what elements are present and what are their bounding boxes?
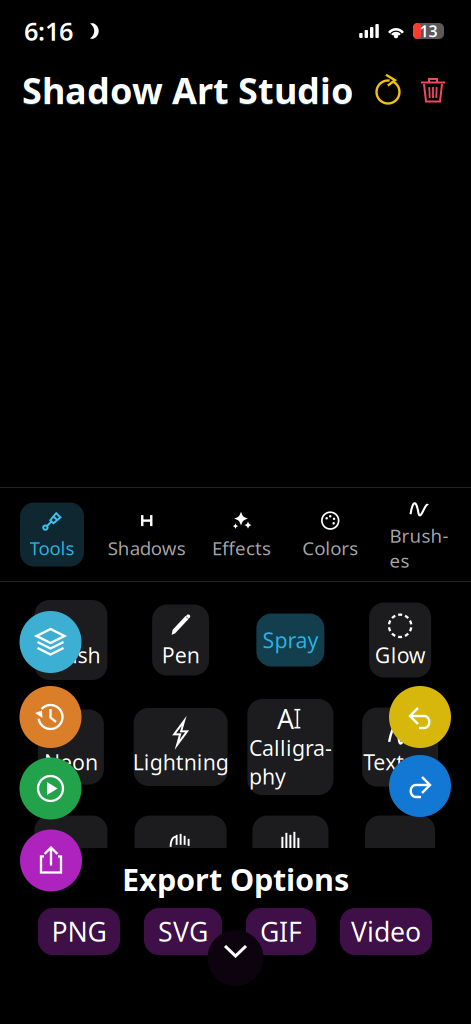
- button[interactable]: GIF: [246, 908, 316, 955]
- button[interactable]: Effects: [209, 502, 273, 566]
- staticText: Neon: [44, 748, 98, 776]
- button[interactable]: Tools: [20, 502, 84, 566]
- button[interactable]: Neon: [16, 709, 126, 784]
- button[interactable]: Redo: [389, 755, 451, 817]
- button[interactable]: Spray: [235, 613, 345, 666]
- staticText: SVG: [158, 914, 208, 949]
- staticText: 13: [419, 20, 437, 42]
- staticText: Shadows: [108, 536, 186, 560]
- staticText: PNG: [51, 914, 106, 949]
- button[interactable]: Brush: [16, 600, 126, 680]
- button[interactable]: PNG: [38, 908, 120, 955]
- staticText: Tools: [29, 536, 74, 560]
- button[interactable]: Video: [340, 908, 432, 955]
- staticText: Shadow Art Studio: [22, 66, 354, 114]
- staticText: A: [277, 701, 294, 736]
- staticText: Shadow Art Studio: [22, 67, 354, 115]
- button[interactable]: Lightning: [126, 708, 236, 786]
- button[interactable]: Share: [20, 829, 82, 891]
- button[interactable]: SVG: [144, 908, 222, 955]
- button[interactable]: Texture: [345, 707, 455, 786]
- staticText: Pen: [162, 641, 200, 669]
- staticText: Export Options: [122, 859, 349, 899]
- button[interactable]: A: [235, 699, 345, 795]
- button[interactable]: Colors: [298, 502, 362, 566]
- button[interactable]: Shadows: [109, 502, 185, 566]
- button[interactable]: Play: [19, 757, 81, 819]
- button[interactable]: Glow: [345, 602, 455, 677]
- staticText: Effects: [212, 536, 271, 560]
- button[interactable]: Pen: [126, 604, 236, 675]
- staticText: Colors: [302, 536, 358, 560]
- staticText: Video: [351, 914, 421, 949]
- button[interactable]: Redo: [373, 73, 405, 107]
- staticText: Lightning: [133, 748, 229, 776]
- staticText: Glow: [375, 641, 426, 669]
- staticText: Blur: [269, 855, 311, 883]
- staticText: Texture: [363, 748, 437, 776]
- button[interactable]: History: [19, 686, 81, 748]
- button[interactable]: Fade: [345, 815, 455, 892]
- staticText: Brush- es: [389, 523, 448, 573]
- button[interactable]: Smear: [126, 815, 236, 892]
- staticText: Spray: [262, 626, 318, 654]
- button[interactable]: Collapse: [223, 944, 247, 957]
- button[interactable]: Brush- es: [387, 502, 451, 566]
- button[interactable]: Layers: [19, 611, 81, 673]
- staticText: 6:16: [24, 14, 73, 48]
- staticText: Smear: [148, 855, 213, 883]
- button[interactable]: Blur: [235, 815, 345, 892]
- staticText: Smudge: [29, 855, 112, 883]
- button[interactable]: Smudge: [16, 815, 126, 892]
- staticText: Calligra- phy: [249, 734, 332, 790]
- staticText: GIF: [260, 914, 302, 949]
- staticText: Brush: [41, 641, 100, 669]
- button[interactable]: Delete: [405, 73, 449, 107]
- button[interactable]: Undo: [389, 686, 451, 748]
